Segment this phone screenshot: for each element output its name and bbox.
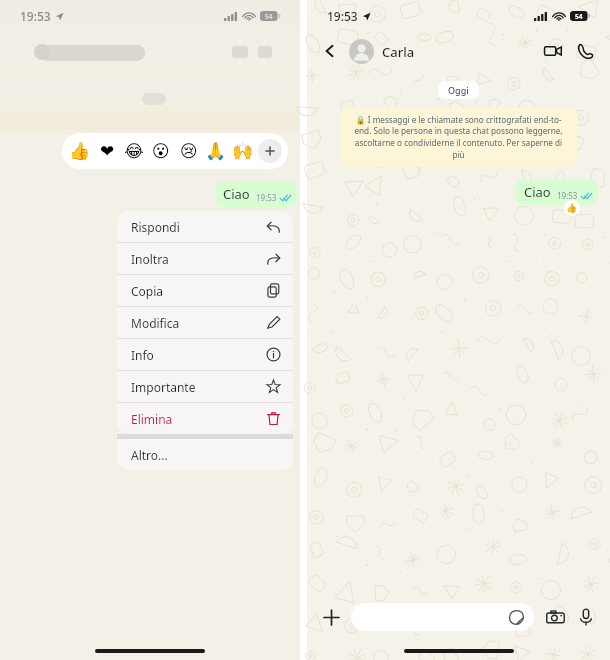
staticText: 19:53 bbox=[256, 192, 277, 203]
staticText: 🙌 bbox=[232, 141, 254, 161]
button[interactable]: Rispondi bbox=[117, 211, 293, 242]
button[interactable]: Info bbox=[117, 339, 293, 370]
staticText: Inoltra bbox=[131, 251, 169, 267]
staticText: Ciao bbox=[223, 185, 250, 203]
button[interactable]: Camera bbox=[541, 603, 569, 631]
button[interactable]: Voice message bbox=[572, 603, 600, 631]
staticText: Modifica bbox=[131, 315, 180, 331]
staticText: Info bbox=[131, 347, 154, 363]
staticText: Importante bbox=[131, 379, 196, 395]
staticText: 19:53 bbox=[557, 190, 578, 201]
staticText: Rispondi bbox=[131, 219, 180, 235]
staticText: Oggi bbox=[448, 84, 469, 96]
staticText: 🔒 I messaggi e le chiamate sono crittogr… bbox=[350, 114, 567, 161]
button[interactable]: Carla bbox=[349, 39, 415, 64]
button[interactable]: Modifica bbox=[117, 307, 293, 338]
staticText: Elimina bbox=[131, 411, 173, 427]
staticText: 👍 bbox=[69, 141, 91, 161]
staticText: 😢 bbox=[180, 141, 198, 161]
button[interactable]: ❤️ bbox=[95, 139, 119, 163]
button[interactable]: 😂 bbox=[122, 139, 146, 163]
button[interactable]: 😢 bbox=[177, 139, 201, 163]
staticText: 😂 bbox=[124, 141, 144, 161]
button[interactable]: Importante bbox=[117, 371, 293, 402]
staticText: ❤️ bbox=[100, 141, 115, 161]
staticText: Altro... bbox=[131, 447, 168, 463]
button[interactable]: 🙏 bbox=[204, 139, 228, 163]
staticText: Copia bbox=[131, 283, 164, 299]
staticText: 19:53 bbox=[20, 8, 51, 24]
button[interactable]: Video call bbox=[538, 36, 568, 66]
button[interactable]: Elimina bbox=[117, 403, 293, 434]
button[interactable]: 😮 bbox=[149, 139, 173, 163]
button[interactable]: Inoltra bbox=[117, 243, 293, 274]
button[interactable]: Back bbox=[317, 38, 343, 64]
button[interactable] bbox=[351, 603, 534, 631]
staticText: Ciao bbox=[524, 183, 551, 201]
button[interactable]: Attach bbox=[317, 603, 345, 631]
button[interactable]: 🙌 bbox=[231, 139, 255, 163]
button[interactable]: More reactions bbox=[258, 139, 282, 163]
button[interactable]: Copia bbox=[117, 275, 293, 306]
staticText: 🙏 bbox=[205, 141, 227, 161]
staticText: 19:53 bbox=[327, 8, 358, 24]
button[interactable]: Voice call bbox=[570, 36, 600, 66]
staticText: 👍 bbox=[566, 203, 578, 214]
staticText: 54 bbox=[265, 12, 273, 21]
staticText: Carla bbox=[382, 43, 415, 61]
button[interactable]: 👍 bbox=[68, 139, 92, 163]
staticText: 😮 bbox=[152, 141, 170, 161]
staticText: 54 bbox=[575, 12, 583, 21]
button[interactable]: Altro... bbox=[117, 439, 293, 470]
